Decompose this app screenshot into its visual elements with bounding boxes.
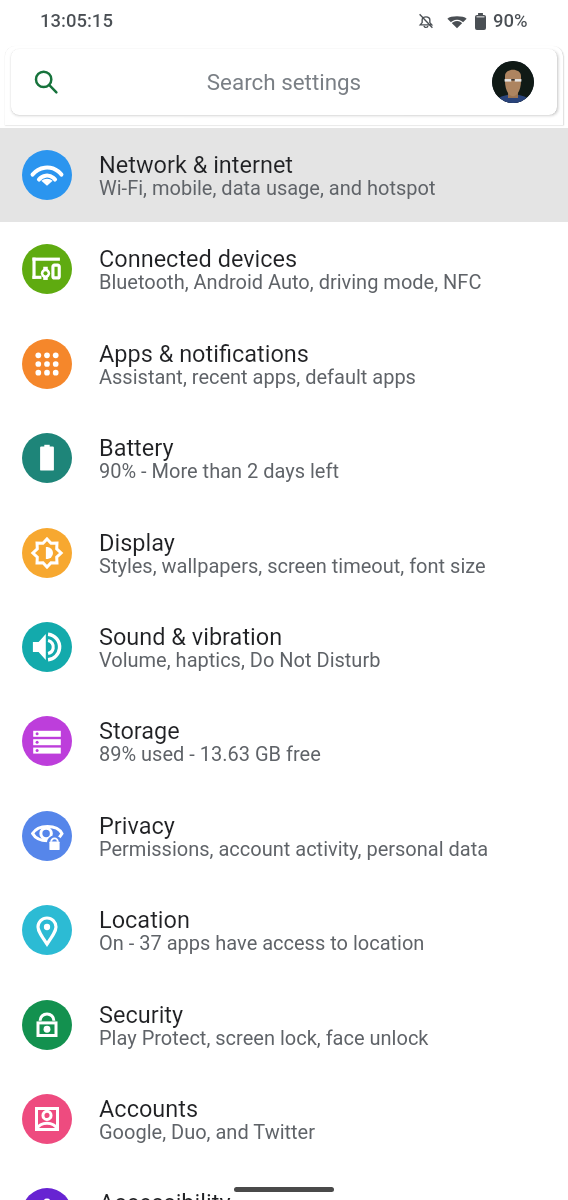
staticText: On - 37 apps have access to location	[99, 931, 425, 954]
staticText: Connected devices	[99, 245, 298, 273]
button[interactable]: Apps & notifications	[0, 317, 568, 411]
button[interactable]: Security	[0, 978, 568, 1072]
staticText: Styles, wallpapers, screen timeout, font…	[99, 554, 486, 577]
button[interactable]: Location	[0, 883, 568, 977]
staticText: Security	[99, 1001, 184, 1029]
staticText: Display	[99, 529, 175, 557]
staticText: Location	[99, 906, 190, 934]
button[interactable]: Display	[0, 506, 568, 600]
staticText: Bluetooth, Android Auto, driving mode, N…	[99, 270, 482, 293]
staticText: Battery	[99, 434, 174, 462]
staticText: Network & internet	[99, 151, 294, 179]
staticText: Accounts	[99, 1095, 199, 1123]
button[interactable]: Account	[492, 61, 534, 103]
staticText: 90% - More than 2 days left	[99, 459, 339, 482]
staticText: Play Protect, screen lock, face unlock	[99, 1026, 429, 1049]
staticText: Sound & vibration	[99, 623, 283, 651]
button[interactable]: Privacy	[0, 789, 568, 883]
staticText: Apps & notifications	[99, 340, 309, 368]
button[interactable]: Accounts	[0, 1072, 568, 1166]
staticText: Search settings	[66, 69, 502, 95]
staticText: Privacy	[99, 812, 175, 840]
button[interactable]: Connected devices	[0, 222, 568, 316]
staticText: Permissions, account activity, personal …	[99, 837, 489, 860]
staticText: Storage	[99, 717, 180, 745]
staticText: Google, Duo, and Twitter	[99, 1120, 315, 1143]
button[interactable]: Search settings	[11, 49, 495, 115]
staticText: Volume, haptics, Do Not Disturb	[99, 648, 381, 671]
button[interactable]: Sound & vibration	[0, 600, 568, 694]
staticText: Accessibility	[99, 1189, 231, 1200]
button[interactable]: Network & internet	[0, 128, 568, 222]
button[interactable]: Battery	[0, 411, 568, 505]
staticText: Wi-Fi, mobile, data usage, and hotspot	[99, 176, 436, 199]
staticText: Assistant, recent apps, default apps	[99, 365, 416, 388]
button[interactable]: Storage	[0, 694, 568, 788]
button[interactable]: Accessibility	[0, 1166, 568, 1200]
staticText: 90%	[493, 10, 528, 32]
staticText: 13:05:15	[40, 10, 113, 32]
staticText: 89% used - 13.63 GB free	[99, 742, 321, 765]
